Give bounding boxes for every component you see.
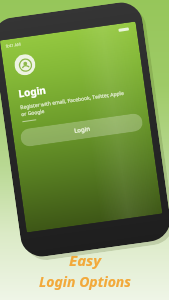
staticText: 9:41 AM bbox=[5, 41, 22, 49]
staticText: Login bbox=[74, 125, 91, 135]
button[interactable]: Login bbox=[19, 112, 144, 147]
staticText: Login bbox=[17, 83, 47, 100]
staticText: Login Options bbox=[39, 272, 131, 291]
staticText: Easy bbox=[69, 250, 101, 270]
staticText: Register with email, Facebook, Twitter, … bbox=[20, 90, 126, 118]
button[interactable]: Profile bbox=[13, 53, 37, 77]
